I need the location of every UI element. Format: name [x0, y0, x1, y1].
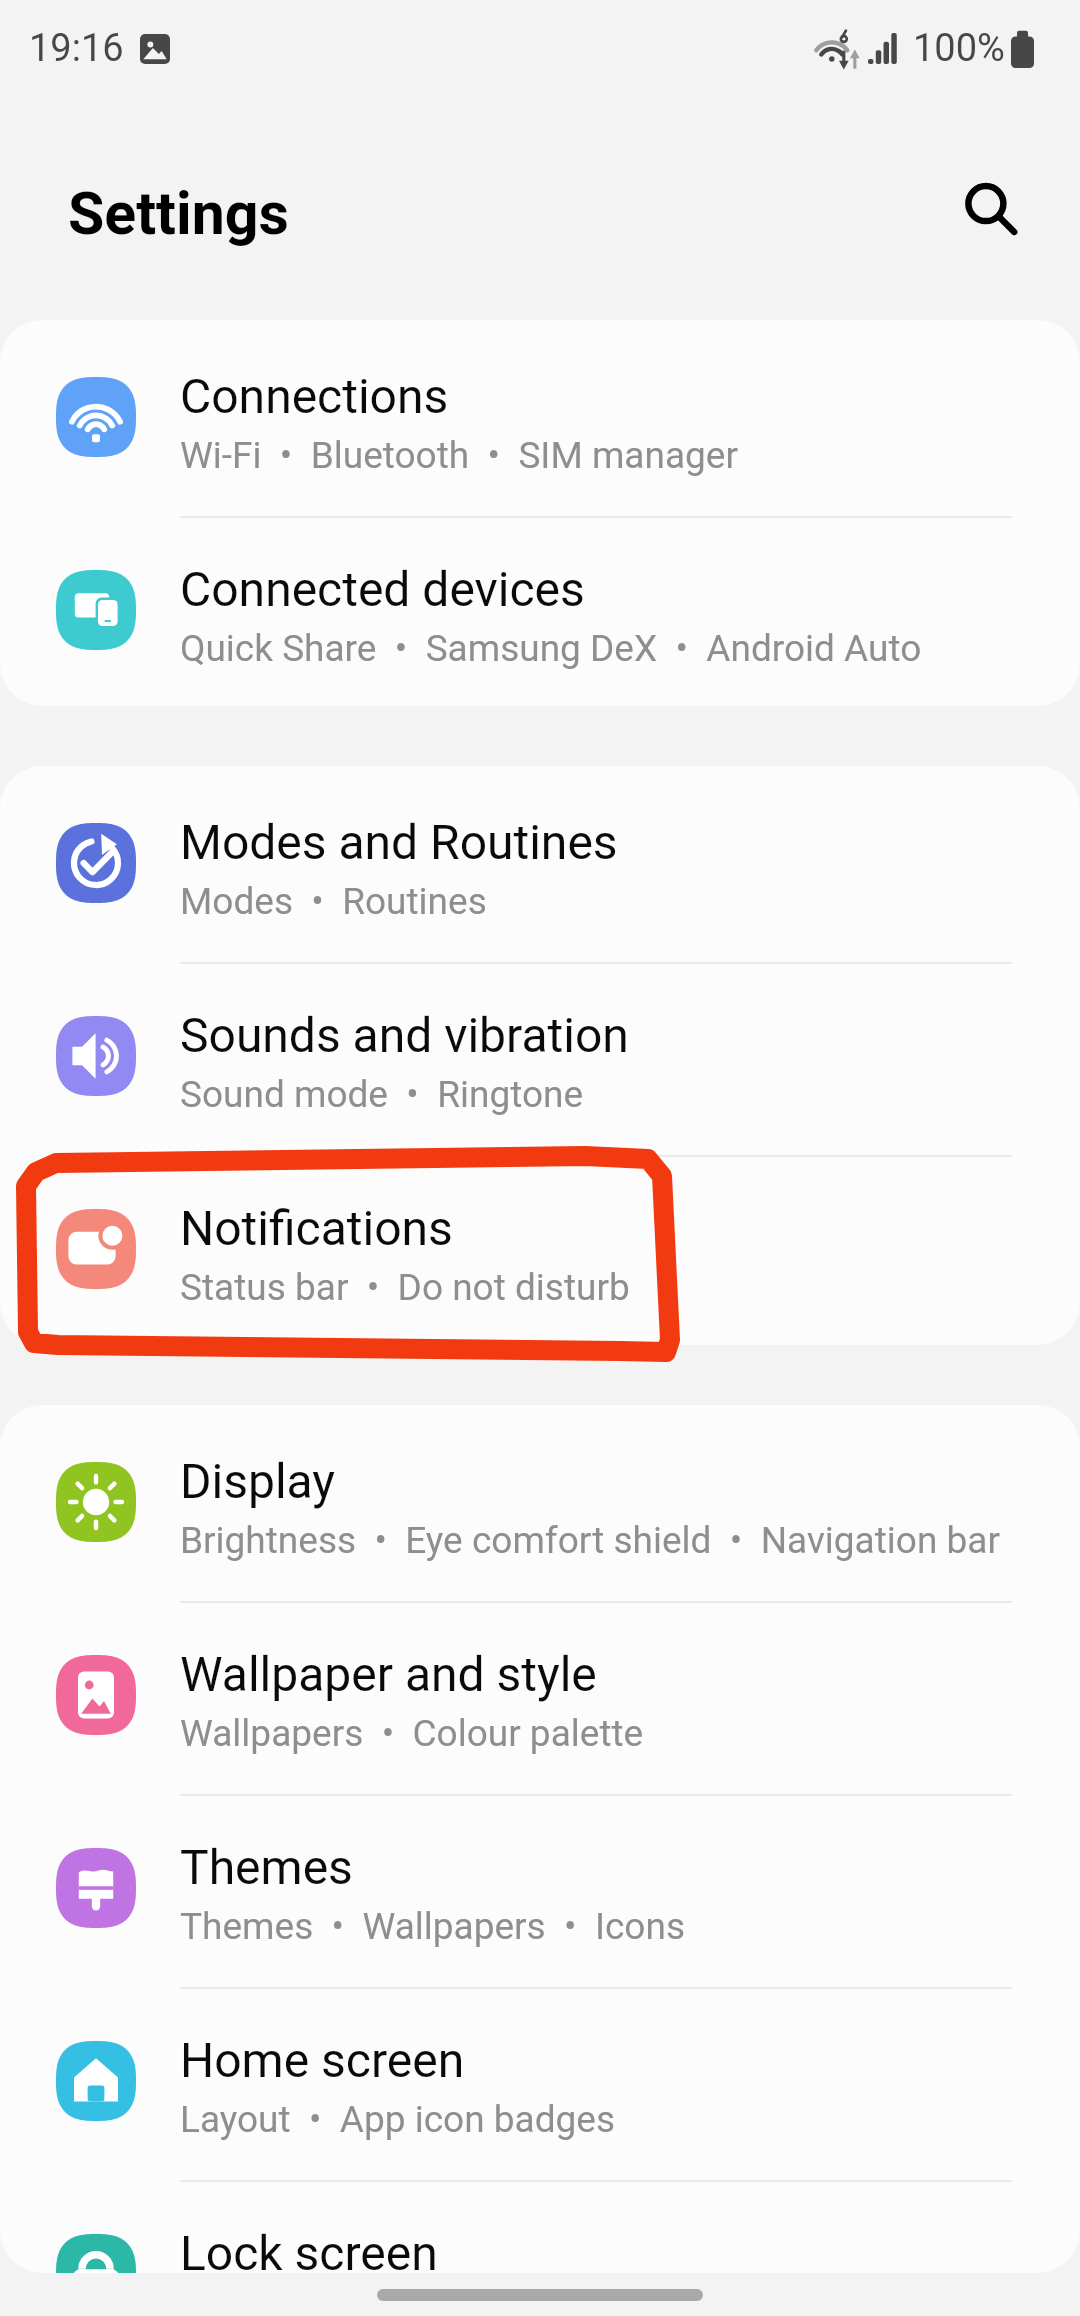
- staticText: Home screen: [180, 2032, 465, 2088]
- staticText: Wi-Fi • Bluetooth • SIM manager: [180, 434, 738, 477]
- staticText: Connections: [180, 368, 449, 424]
- staticText: Connected devices: [180, 561, 585, 617]
- staticText: Layout • App icon badges: [180, 2098, 616, 2141]
- staticText: Sounds and vibration: [180, 1007, 629, 1063]
- button[interactable]: Home screen: [0, 1984, 1080, 2177]
- button[interactable]: Connections: [0, 320, 1080, 513]
- button[interactable]: Connected devices: [0, 513, 1080, 706]
- button[interactable]: Notifications: [0, 1152, 1080, 1345]
- staticText: Wallpapers • Colour palette: [180, 1712, 644, 1755]
- staticText: Status bar • Do not disturb: [180, 1266, 630, 1309]
- staticText: Notifications: [180, 1200, 453, 1256]
- staticText: Display: [180, 1453, 336, 1509]
- button[interactable]: Wallpaper and style: [0, 1598, 1080, 1791]
- button[interactable]: Display: [0, 1405, 1080, 1598]
- button[interactable]: Lock screen: [0, 2177, 1080, 2273]
- button[interactable]: Sounds and vibration: [0, 959, 1080, 1152]
- staticText: 19:16: [29, 26, 124, 71]
- staticText: Brightness • Eye comfort shield • Naviga…: [180, 1519, 1000, 1562]
- staticText: Themes • Wallpapers • Icons: [180, 1905, 685, 1948]
- staticText: Quick Share • Samsung DeX • Android Auto: [180, 627, 922, 670]
- button[interactable]: Themes: [0, 1791, 1080, 1984]
- staticText: Modes • Routines: [180, 880, 487, 923]
- staticText: Lock screen: [180, 2225, 438, 2273]
- staticText: Settings: [68, 179, 289, 248]
- button[interactable]: Search: [936, 155, 1046, 265]
- staticText: Wallpaper and style: [180, 1646, 597, 1702]
- staticText: Sound mode • Ringtone: [180, 1073, 584, 1116]
- button[interactable]: Modes and Routines: [0, 766, 1080, 959]
- staticText: Modes and Routines: [180, 814, 618, 870]
- staticText: Themes: [180, 1839, 353, 1895]
- staticText: 100%: [913, 26, 1005, 71]
